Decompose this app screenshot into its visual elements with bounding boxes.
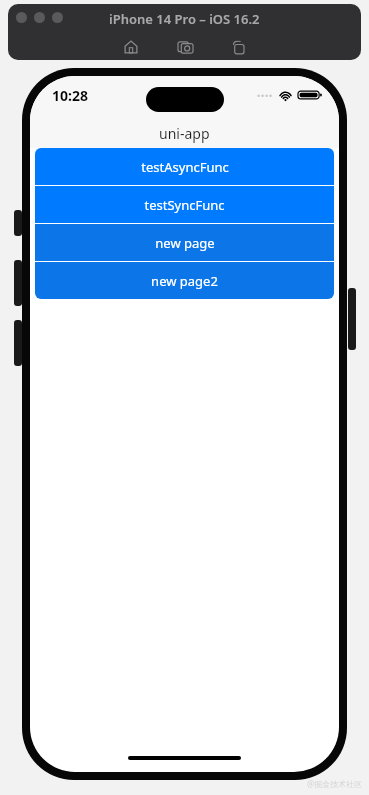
button[interactable]: Screenshot [170,32,200,60]
button[interactable]: new page [35,224,334,261]
button[interactable]: Home [116,32,146,60]
button[interactable]: testSyncFunc [35,186,334,223]
staticText: @掘金技术社区 [307,778,363,789]
button[interactable] [52,12,63,23]
staticText: iPhone 14 Pro – iOS 16.2 [109,10,260,28]
staticText: new page [155,234,215,252]
button[interactable]: Rotate [224,32,254,60]
button[interactable] [16,12,27,23]
button[interactable]: new page2 [35,262,334,299]
staticText: new page2 [151,272,218,290]
button[interactable]: testAsyncFunc [35,148,334,185]
staticText: uni-app [159,124,210,143]
staticText: testAsyncFunc [141,158,229,176]
button[interactable] [34,12,45,23]
staticText: 10:28 [52,86,88,105]
staticText: testSyncFunc [144,196,225,214]
